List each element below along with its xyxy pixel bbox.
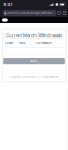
button[interactable]: Tabs — [62, 10, 67, 16]
staticText: Copyright © 2020 Merchi. All Rights Rese… — [10, 76, 58, 78]
staticText: BACK — [30, 60, 37, 62]
staticText: Amount — [5, 42, 13, 45]
button[interactable]: Reload — [56, 10, 62, 16]
staticText: Date Requested — [36, 42, 51, 45]
button[interactable]: BACK — [3, 58, 65, 64]
button[interactable]: merchi.com/manage/withdrawals — [3, 10, 56, 16]
staticText: Status — [19, 42, 25, 45]
staticText: merchi.com/manage/withdrawals — [7, 11, 55, 15]
staticText: 9:41 — [3, 2, 12, 7]
staticText: Current Merchi Withdrawals — [6, 33, 62, 38]
